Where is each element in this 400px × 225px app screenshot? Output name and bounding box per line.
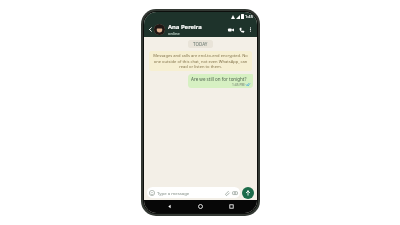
button[interactable]: Attach	[224, 190, 230, 196]
button[interactable]: Back	[147, 26, 154, 33]
staticText: Messages and calls are end-to-end encryp…	[153, 53, 248, 69]
staticText: online	[168, 31, 180, 36]
button[interactable]: Send	[242, 187, 254, 199]
button[interactable]: Recent apps	[226, 201, 237, 212]
staticText: 1:45	[245, 14, 253, 19]
button[interactable]: Camera	[232, 190, 238, 196]
button[interactable]: Are we still on for tonight?	[188, 74, 253, 88]
button[interactable]: Video call	[226, 25, 235, 34]
button[interactable]: Voice call	[237, 25, 246, 34]
button[interactable]: Ana Pereira	[168, 23, 226, 36]
staticText: Type a message	[157, 190, 224, 196]
staticText: Ana Pereira	[168, 23, 202, 31]
staticText: 1:45 PM	[232, 82, 245, 86]
staticText: Are we still on for tonight?	[191, 76, 247, 82]
button[interactable]: More options	[247, 26, 254, 33]
staticText: TODAY	[193, 41, 208, 47]
button[interactable]: Back	[164, 201, 175, 212]
button[interactable]: Home	[195, 201, 206, 212]
button[interactable]: Type a message	[147, 187, 240, 198]
button[interactable]: Contact photo	[154, 24, 165, 35]
